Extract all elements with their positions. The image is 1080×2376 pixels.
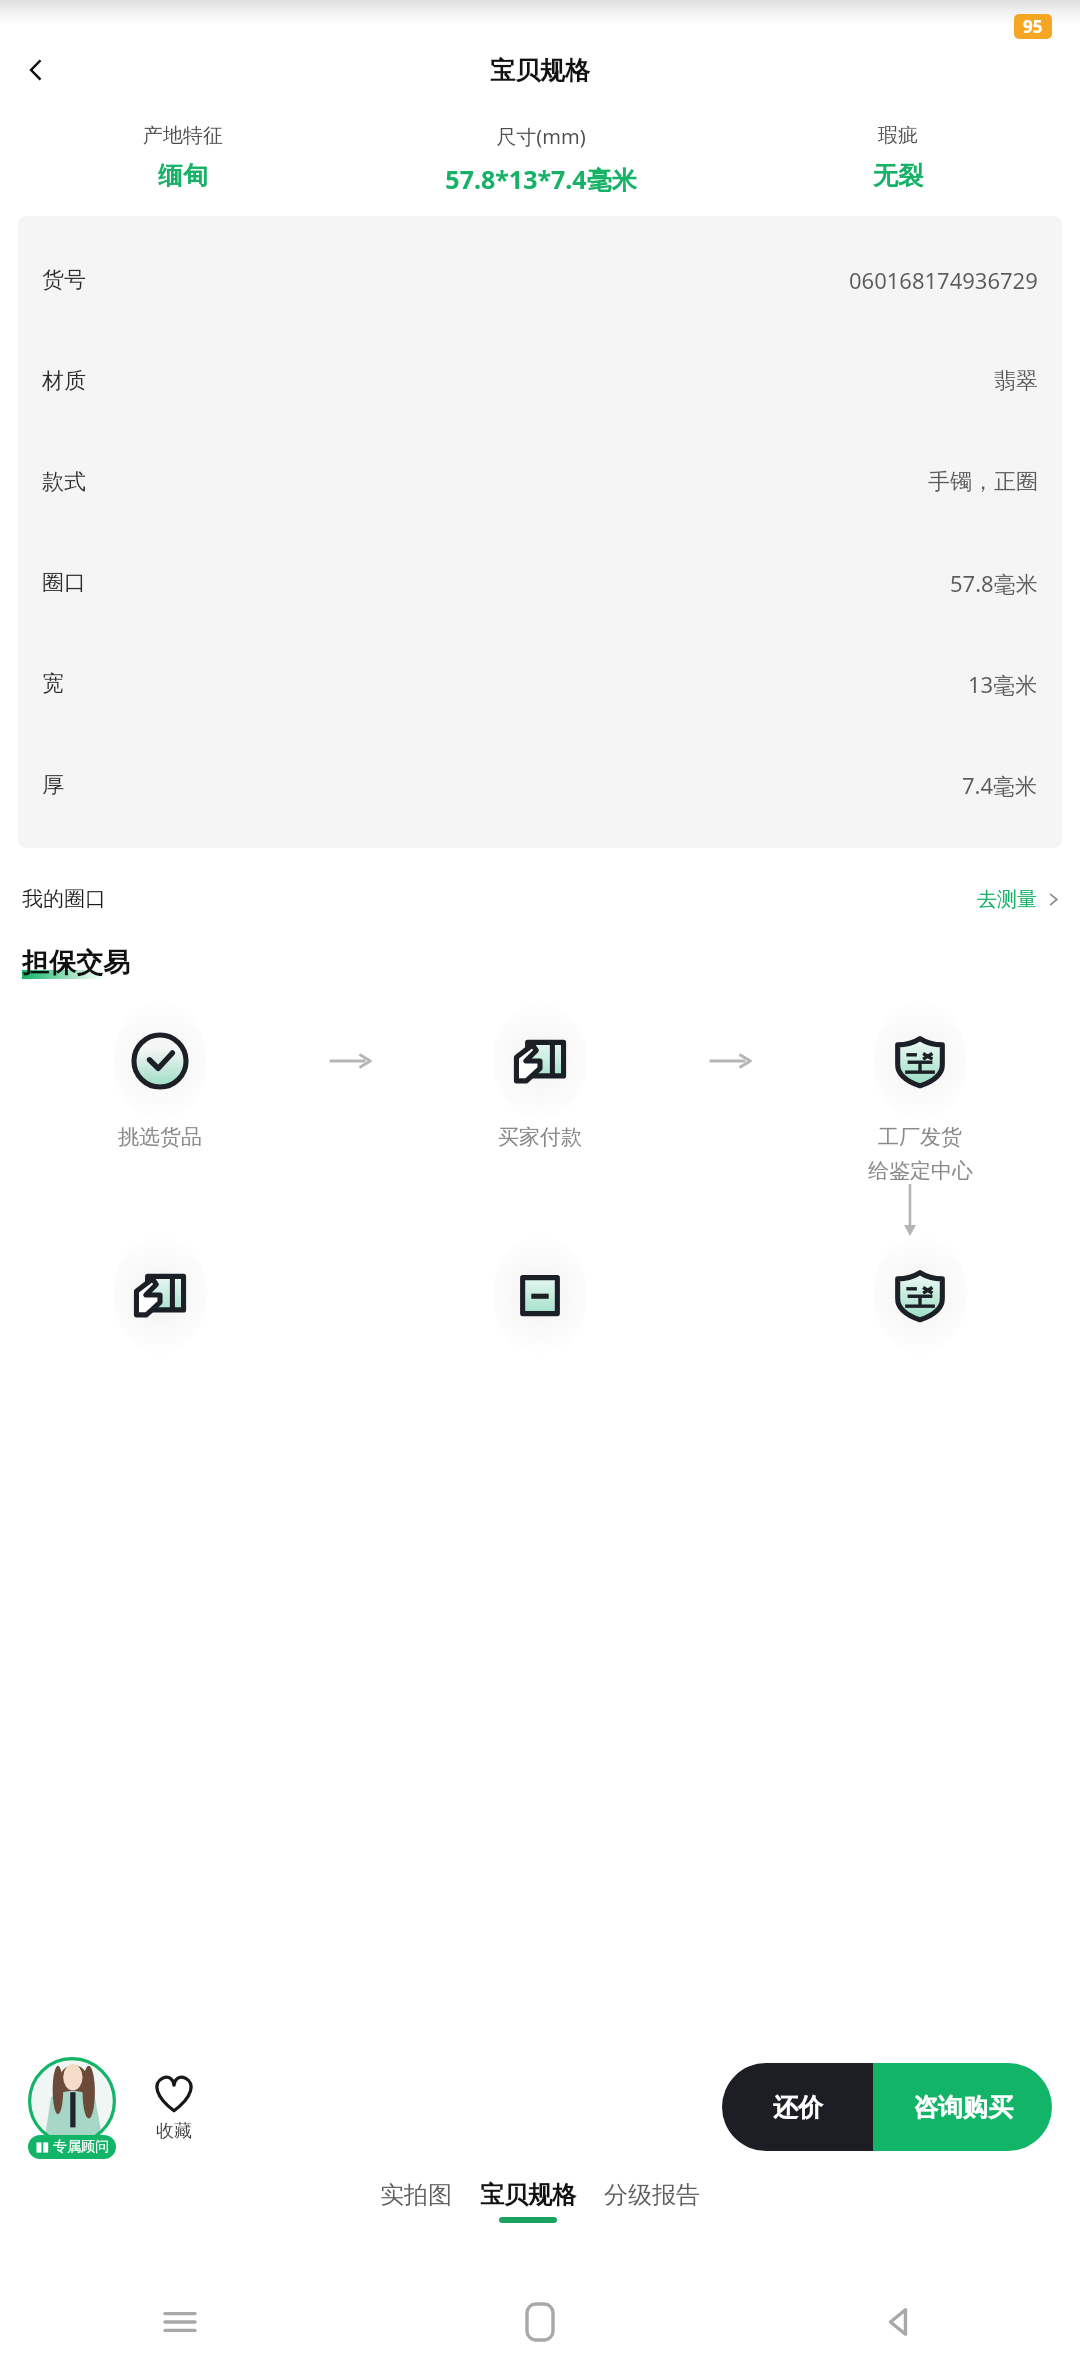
other: Home [527, 2304, 553, 2340]
button[interactable]: Back [12, 46, 60, 94]
staticText: 瑕疵 [878, 123, 918, 148]
staticText: 缅甸 [158, 160, 208, 191]
staticText: 给鉴定中心 [868, 1158, 973, 1184]
staticText: 收藏 [156, 2120, 192, 2143]
staticText: 我的圈口 [22, 886, 106, 912]
staticText: 买家付款 [498, 1124, 582, 1150]
staticText: 尺寸(mm) [496, 123, 586, 150]
button[interactable]: 实拍图 [366, 2172, 466, 2231]
staticText: 翡翠 [994, 367, 1038, 395]
staticText: 产地特征 [143, 123, 223, 148]
staticText: 工厂发货 [878, 1124, 962, 1150]
button[interactable]: 挑选货品 [0, 1002, 320, 1150]
button[interactable]: 瑕疵 [719, 123, 1076, 191]
staticText: 57.8*13*7.4毫米 [445, 162, 637, 196]
button[interactable]: 尺寸(mm) [362, 123, 719, 196]
button[interactable]: 收藏 [146, 2068, 202, 2147]
staticText: 还价 [773, 2092, 823, 2123]
button[interactable] [760, 1236, 1080, 1354]
staticText: 95 [1023, 15, 1043, 38]
staticText: 13毫米 [968, 669, 1038, 699]
staticText: 货号 [42, 266, 86, 294]
button[interactable] [380, 1236, 700, 1354]
staticText: 圈口 [42, 569, 86, 597]
button[interactable]: 95 [1014, 14, 1052, 39]
button[interactable]: 买家付款 [380, 1002, 700, 1150]
staticText: 宽 [42, 670, 64, 698]
button[interactable]: 产地特征 [4, 123, 362, 191]
staticText: 宝贝规格 [490, 55, 590, 86]
button[interactable]: 分级报告 [590, 2172, 714, 2231]
button[interactable]: 专属顾问 [20, 2055, 124, 2159]
button[interactable] [0, 1236, 320, 1354]
staticText: 手镯，正圈 [928, 468, 1038, 496]
staticText: 挑选货品 [118, 1124, 202, 1150]
button[interactable]: 工厂发货 [760, 1002, 1080, 1184]
button[interactable]: 我的圈口 [0, 868, 1080, 930]
staticText: 无裂 [873, 160, 923, 191]
button[interactable]: 宝贝规格 [466, 2172, 590, 2231]
staticText: 款式 [42, 468, 86, 496]
staticText: 57.8毫米 [950, 568, 1038, 598]
staticText: 分级报告 [604, 2180, 700, 2210]
button[interactable]: 还价 [722, 2063, 873, 2151]
staticText: 厚 [42, 771, 64, 799]
staticText: 去测量 [977, 887, 1037, 912]
staticText: 咨询购买 [913, 2092, 1013, 2123]
staticText: 060168174936729 [849, 265, 1038, 295]
other: Back [883, 2305, 917, 2339]
button[interactable]: 咨询购买 [873, 2063, 1052, 2151]
staticText: 宝贝规格 [480, 2180, 576, 2210]
staticText: 担保交易 [22, 946, 130, 980]
staticText: 材质 [42, 367, 86, 395]
staticText: 实拍图 [380, 2180, 452, 2210]
staticText: 专属顾问 [53, 2138, 109, 2156]
staticText: 7.4毫米 [962, 770, 1038, 800]
other: Recents [165, 2307, 195, 2337]
